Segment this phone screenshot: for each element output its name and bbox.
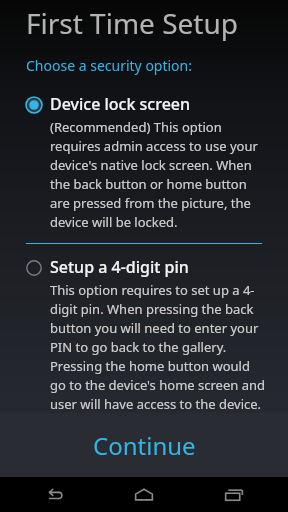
staticText: Choose a security option: [26,56,192,75]
staticText: Device lock screen [50,93,191,115]
button[interactable]: Home [108,477,180,512]
staticText: Setup a 4-digit pin [50,256,189,278]
staticText: (Recommended) This option requires admin… [50,118,268,231]
button[interactable]: Setup a 4-digit pin [0,256,288,413]
staticText: This option requires to set up a 4-digit… [50,281,268,413]
staticText: Continue [93,429,196,462]
button[interactable]: Recent apps [198,477,270,512]
button[interactable]: Back [18,477,90,512]
staticText: First Time Setup [26,4,238,42]
button[interactable]: Device lock screen [0,93,288,231]
button[interactable]: Continue [0,413,288,477]
